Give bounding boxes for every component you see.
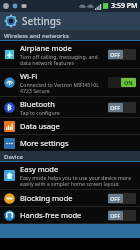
other: Easy mode — [4, 170, 15, 181]
staticText: Wi-Fi — [20, 71, 38, 81]
other: Hands-free mode — [4, 210, 15, 221]
button[interactable]: Settings icon — [5, 12, 140, 30]
button[interactable]: Hands-free mode — [4, 207, 136, 223]
staticText: Blocking mode — [20, 193, 73, 203]
button[interactable]: Wi-Fi — [4, 69, 136, 96]
staticText: Airplane mode — [20, 43, 72, 53]
other: Wi-Fi — [4, 77, 15, 88]
staticText: Connected to Verizon MIFI4510L 4723 Secu… — [20, 81, 105, 94]
button[interactable]: Switch on — [108, 77, 136, 88]
button[interactable]: Airplane mode — [4, 41, 136, 68]
staticText: OFF — [110, 51, 121, 58]
staticText: Easy mode — [20, 164, 59, 174]
other: Blocking mode — [4, 193, 15, 204]
staticText: Tap to configure — [20, 109, 60, 116]
staticText: Hands-free mode — [20, 210, 82, 220]
other: Settings icon — [5, 15, 17, 27]
button[interactable]: Switch off — [108, 102, 136, 113]
staticText: Easy mode helps you to use your device m… — [20, 174, 136, 187]
staticText: Bluetooth — [20, 99, 55, 109]
staticText: More settings — [20, 138, 69, 148]
staticText: Data usage — [20, 121, 60, 131]
staticText: OFF — [110, 104, 121, 111]
button[interactable]: Switch off — [108, 193, 136, 204]
staticText: 3:59 PM — [111, 1, 138, 11]
staticText: Turn off calling, messaging, and data ne… — [20, 53, 105, 66]
button[interactable]: Data usage — [4, 118, 136, 134]
staticText: OFF — [110, 212, 121, 219]
button[interactable]: Switch off — [108, 49, 136, 60]
staticText: ON — [124, 79, 133, 86]
other: Data usage — [4, 121, 15, 132]
staticText: OFF — [110, 195, 121, 202]
button[interactable]: Easy mode — [4, 162, 136, 189]
staticText: Settings — [22, 14, 61, 28]
other: More settings — [4, 138, 15, 149]
staticText: Wireless and networks — [4, 32, 69, 40]
other: Airplane mode — [4, 49, 15, 60]
button[interactable]: Switch off — [108, 210, 136, 221]
other: Bluetooth — [4, 102, 15, 113]
staticText: Device — [4, 153, 23, 161]
button[interactable]: Bluetooth — [4, 97, 136, 117]
button[interactable]: More settings — [4, 135, 136, 151]
button[interactable]: Blocking mode — [4, 190, 136, 206]
